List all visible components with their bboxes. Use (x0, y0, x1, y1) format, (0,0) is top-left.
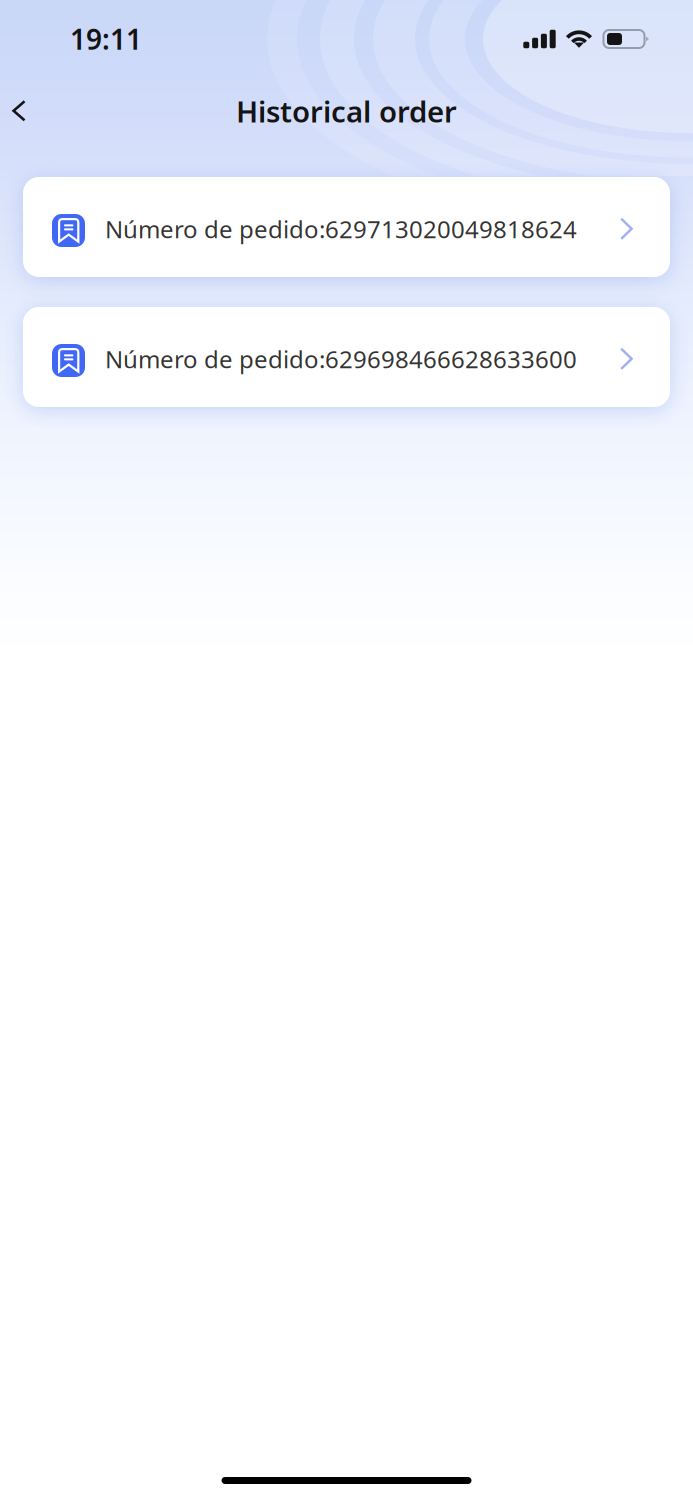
staticText: Número de pedido:629698466628633600 (105, 343, 577, 375)
staticText: Historical order (236, 91, 457, 130)
staticText: Número de pedido:629713020049818624 (105, 213, 577, 245)
button[interactable]: Número de pedido:629713020049818624 (23, 177, 670, 277)
staticText: 19:11 (70, 20, 142, 58)
button[interactable]: Número de pedido:629698466628633600 (23, 307, 670, 407)
button[interactable]: Back (0, 89, 41, 133)
